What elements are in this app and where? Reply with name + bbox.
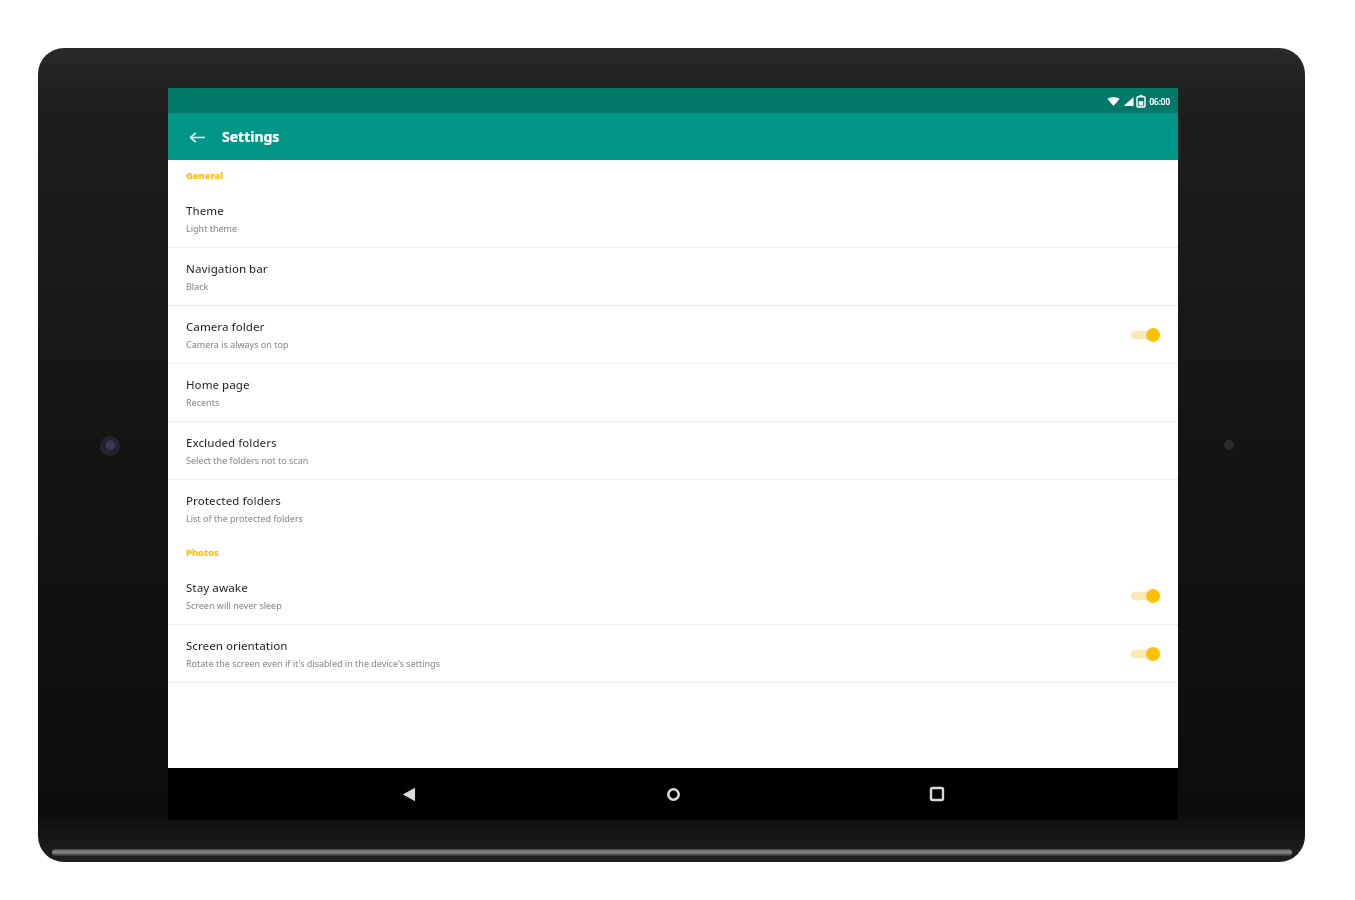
staticText: Theme <box>186 203 224 219</box>
button[interactable]: Toggle <box>1128 641 1162 667</box>
staticText: Camera folder <box>186 319 265 335</box>
staticText: Screen will never sleep <box>186 599 282 611</box>
button[interactable]: Home <box>650 771 696 817</box>
staticText: General <box>186 169 223 182</box>
staticText: Settings <box>222 127 280 146</box>
button[interactable]: Navigation bar <box>168 248 1178 305</box>
button[interactable]: Screen orientation <box>168 625 1178 682</box>
staticText: Recents <box>186 396 220 408</box>
staticText: Rotate the screen even if it's disabled … <box>186 657 440 669</box>
button[interactable]: Toggle <box>1128 583 1162 609</box>
staticText: Home page <box>186 377 250 393</box>
staticText: Stay awake <box>186 580 248 596</box>
staticText: Protected folders <box>186 493 281 509</box>
button[interactable]: Toggle <box>1128 322 1162 348</box>
button[interactable]: Protected folders <box>168 480 1178 537</box>
button[interactable]: Back <box>180 120 214 154</box>
button[interactable]: Home page <box>168 364 1178 421</box>
button[interactable]: Recents <box>914 771 960 817</box>
staticText: Photos <box>186 546 219 559</box>
staticText: Screen orientation <box>186 638 288 654</box>
staticText: List of the protected folders <box>186 512 303 524</box>
staticText: Excluded folders <box>186 435 277 451</box>
staticText: Camera is always on top <box>186 338 289 350</box>
staticText: Black <box>186 280 209 292</box>
staticText: Navigation bar <box>186 261 268 277</box>
button[interactable]: Theme <box>168 190 1178 247</box>
button[interactable]: Camera folder <box>168 306 1178 363</box>
button[interactable]: Back <box>386 771 432 817</box>
staticText: 06:00 <box>1149 96 1170 107</box>
staticText: Light theme <box>186 222 238 234</box>
staticText: Select the folders not to scan <box>186 454 309 466</box>
button[interactable]: Excluded folders <box>168 422 1178 479</box>
button[interactable]: Stay awake <box>168 567 1178 624</box>
